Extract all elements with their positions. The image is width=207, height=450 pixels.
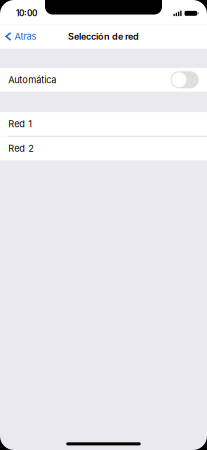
button[interactable]: Automática xyxy=(0,68,207,92)
staticText: Red 2 xyxy=(8,143,34,154)
button[interactable]: Red 2 xyxy=(0,137,207,160)
button[interactable]: Red 1 xyxy=(0,112,207,136)
staticText: Automática xyxy=(8,74,56,85)
staticText: Red 1 xyxy=(8,118,32,129)
staticText: 10:00 xyxy=(16,8,37,18)
staticText: Atrás xyxy=(14,31,36,42)
button[interactable]: Atrás xyxy=(0,24,42,49)
staticText: Selección de red xyxy=(68,31,139,42)
